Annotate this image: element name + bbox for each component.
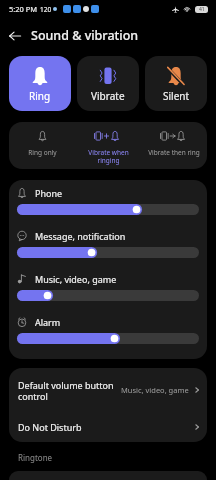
staticText: Music, video, game — [35, 273, 117, 285]
staticText: Silent — [163, 89, 190, 103]
staticText: Vibrate — [91, 89, 125, 103]
button[interactable]: Back — [4, 25, 26, 47]
staticText: 41 — [199, 6, 205, 13]
button[interactable]: Vibrate then ring — [141, 122, 207, 157]
staticText: Music, video, game — [121, 385, 189, 395]
staticText: 120 — [40, 5, 52, 14]
button[interactable]: Ring — [9, 56, 71, 111]
staticText: Default volume button control — [18, 379, 121, 402]
staticText: Sound & vibration — [31, 27, 139, 44]
button[interactable]: Ring only — [9, 122, 75, 157]
staticText: Vibrate when ringing — [88, 148, 129, 165]
staticText: Ringtone — [18, 452, 53, 463]
button[interactable]: Vibrate — [77, 56, 139, 111]
staticText: Ring — [29, 89, 51, 103]
button[interactable]: Default volume button control — [9, 368, 207, 412]
staticText: Vibrate then ring — [148, 148, 200, 157]
staticText: Phone — [35, 187, 63, 199]
staticText: Ring only — [28, 148, 57, 157]
button[interactable]: Silent — [145, 56, 207, 111]
staticText: Alarm — [35, 316, 61, 328]
staticText: Do Not Disturb — [18, 421, 193, 433]
button[interactable]: Do Not Disturb — [9, 412, 207, 442]
button[interactable]: Vibrate when ringing — [75, 122, 141, 165]
staticText: 5:20 PM — [9, 4, 38, 14]
staticText: Message, notification — [35, 230, 126, 242]
